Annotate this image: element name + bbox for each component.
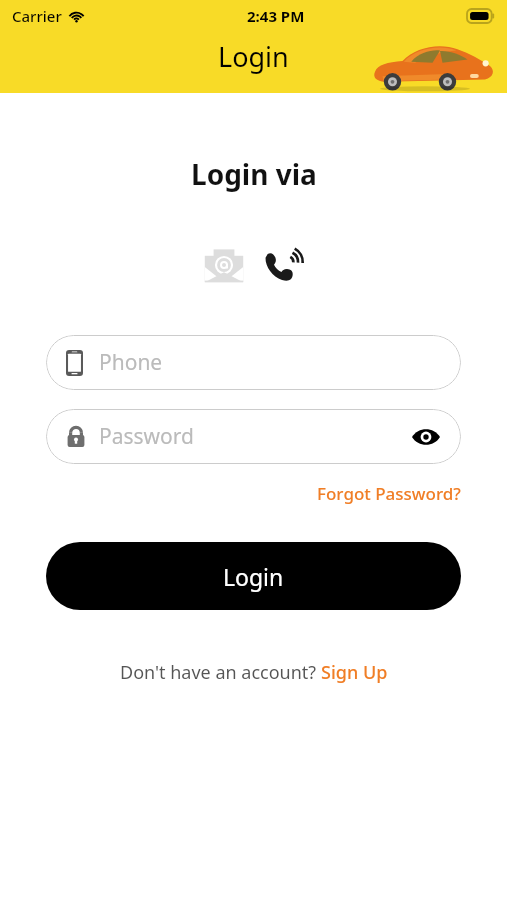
staticText: Forgot Password? [317,482,461,505]
staticText: Password [99,422,194,451]
button[interactable]: Forgot Password? [317,480,461,507]
staticText: Carrier [12,6,62,26]
button[interactable]: Password [46,409,461,464]
button[interactable]: Show password [409,420,443,454]
staticText: Login via [191,155,317,193]
staticText: Phone [99,348,163,377]
button[interactable]: Login via phone [258,241,310,293]
button[interactable]: Login [46,542,461,610]
button[interactable]: Phone [46,335,461,390]
staticText: Login [218,38,289,75]
button[interactable]: Sign Up [321,660,388,685]
button[interactable]: Login via email [198,241,250,293]
staticText: Login [223,561,284,592]
staticText: Sign Up [321,660,388,685]
staticText: Don't have an account? [120,660,321,685]
staticText: 2:43 PM [247,6,305,26]
